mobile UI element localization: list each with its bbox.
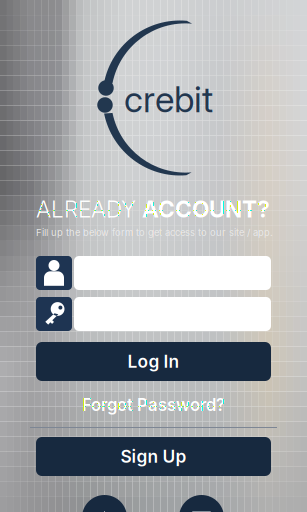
staticText: Forgot Password? bbox=[82, 395, 225, 415]
staticText: crebit bbox=[124, 78, 213, 121]
staticText: Sign Up bbox=[120, 446, 186, 467]
button[interactable]: Forgot Password? bbox=[36, 394, 271, 416]
staticText: ALREADY ACCOUNT? bbox=[36, 196, 270, 223]
button[interactable]: Continue with email bbox=[179, 495, 224, 512]
staticText: Log In bbox=[127, 351, 179, 372]
button[interactable]: Continue with social account bbox=[82, 495, 127, 512]
staticText: Fill up the below form to get access to … bbox=[36, 227, 273, 238]
button[interactable]: Sign Up bbox=[36, 437, 271, 476]
button[interactable]: Log In bbox=[36, 342, 271, 381]
